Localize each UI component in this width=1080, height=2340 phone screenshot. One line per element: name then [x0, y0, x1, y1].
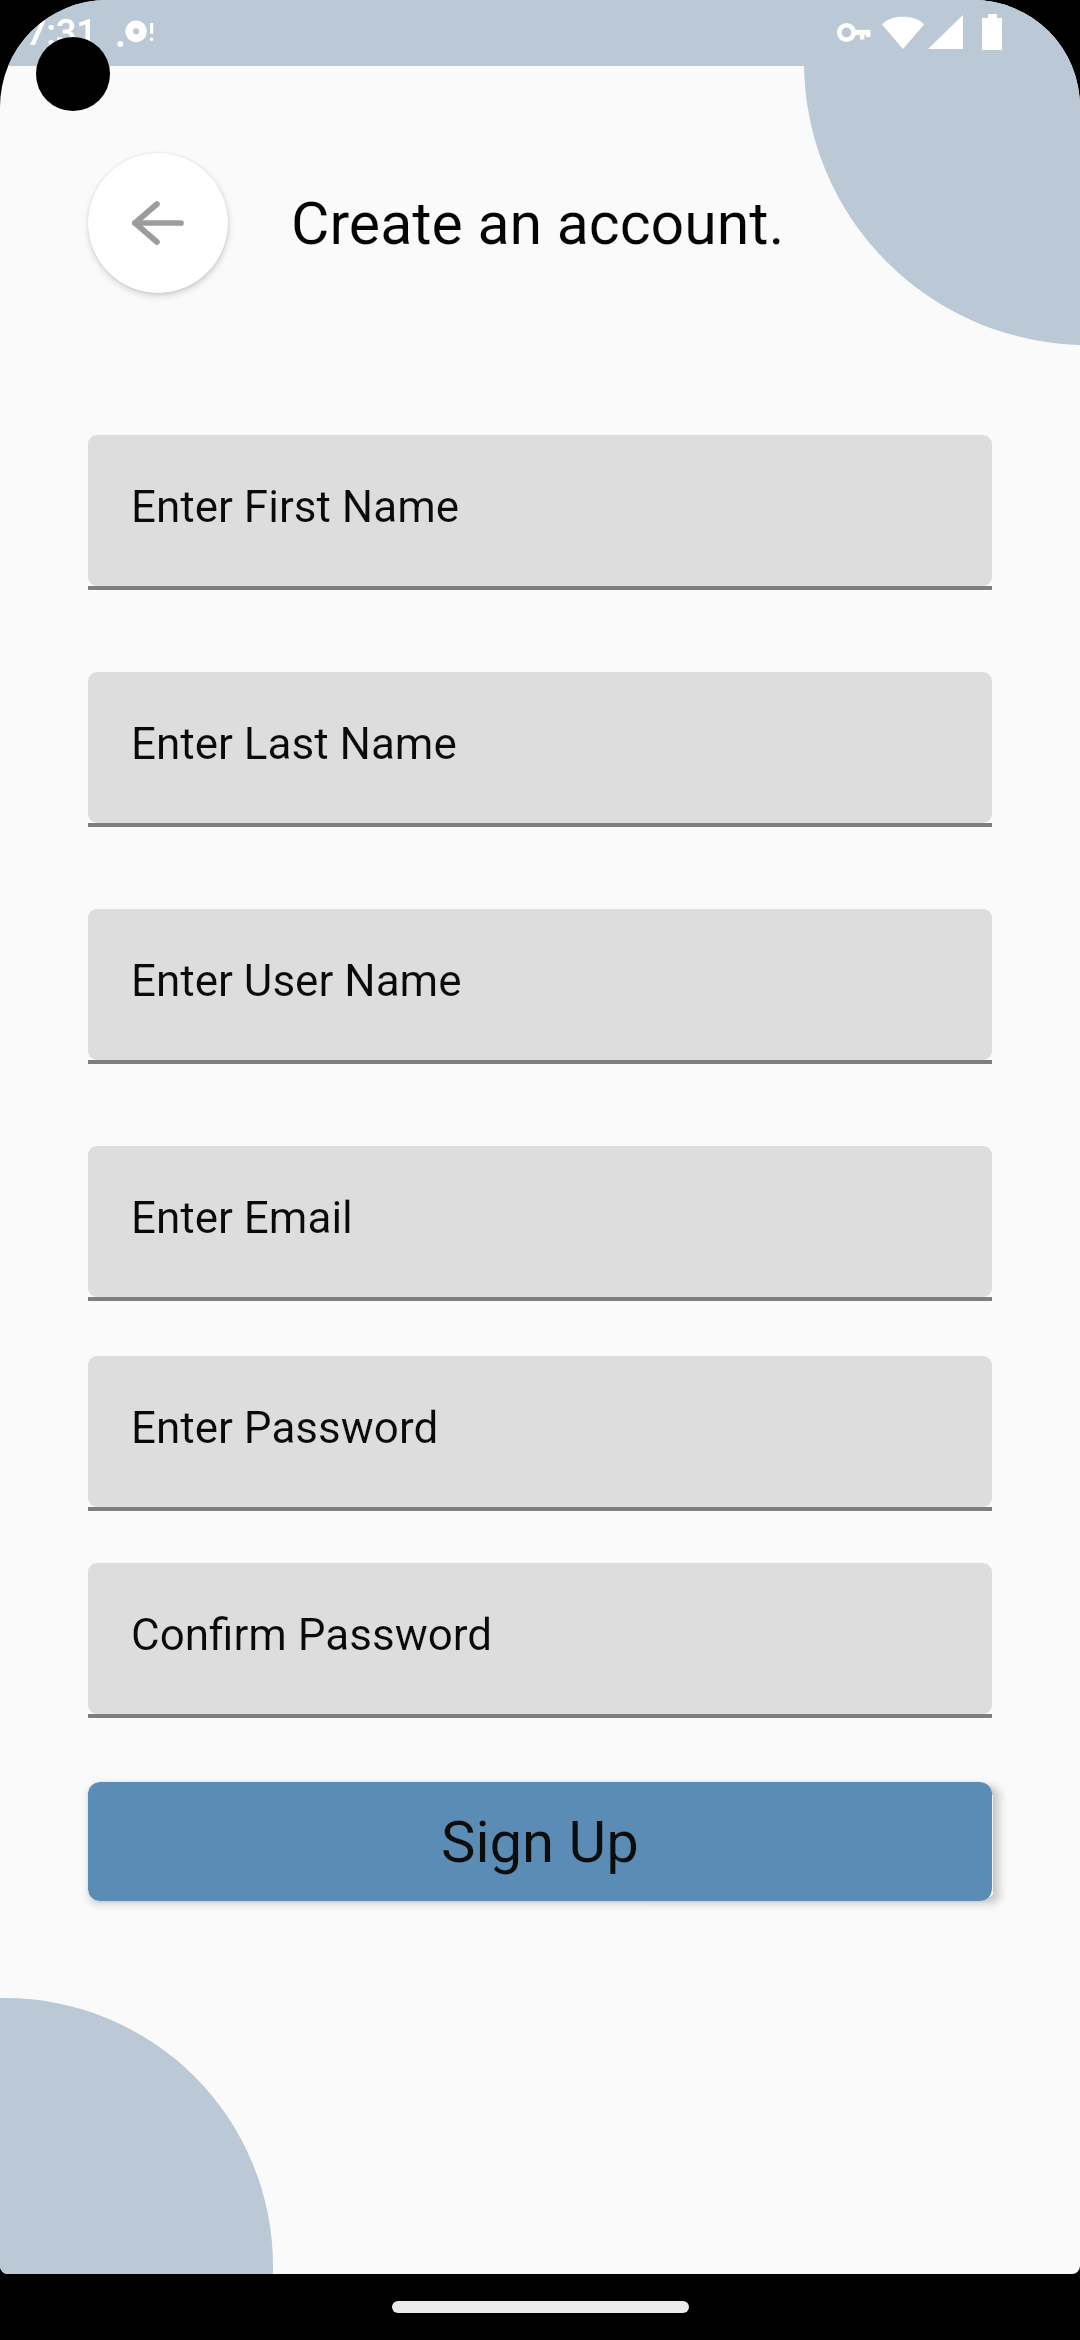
staticText: Enter Last Name [131, 718, 457, 770]
button[interactable]: Enter Password [88, 1356, 992, 1511]
staticText: Enter Email [131, 1192, 353, 1244]
button[interactable]: Enter First Name [88, 435, 992, 590]
button[interactable]: Back [88, 153, 228, 293]
staticText: Confirm Password [131, 1609, 493, 1661]
staticText: Enter First Name [131, 481, 460, 533]
staticText: Create an account. [291, 189, 785, 258]
button[interactable]: Confirm Password [88, 1563, 992, 1718]
button[interactable]: Sign Up [88, 1782, 992, 1901]
button[interactable]: Enter Email [88, 1146, 992, 1301]
staticText: Enter Password [131, 1402, 439, 1454]
staticText: Sign Up [441, 1808, 639, 1876]
button[interactable]: Enter User Name [88, 909, 992, 1064]
button[interactable]: Enter Last Name [88, 672, 992, 827]
staticText: 7:31 [26, 12, 97, 54]
staticText: Enter User Name [131, 955, 462, 1007]
